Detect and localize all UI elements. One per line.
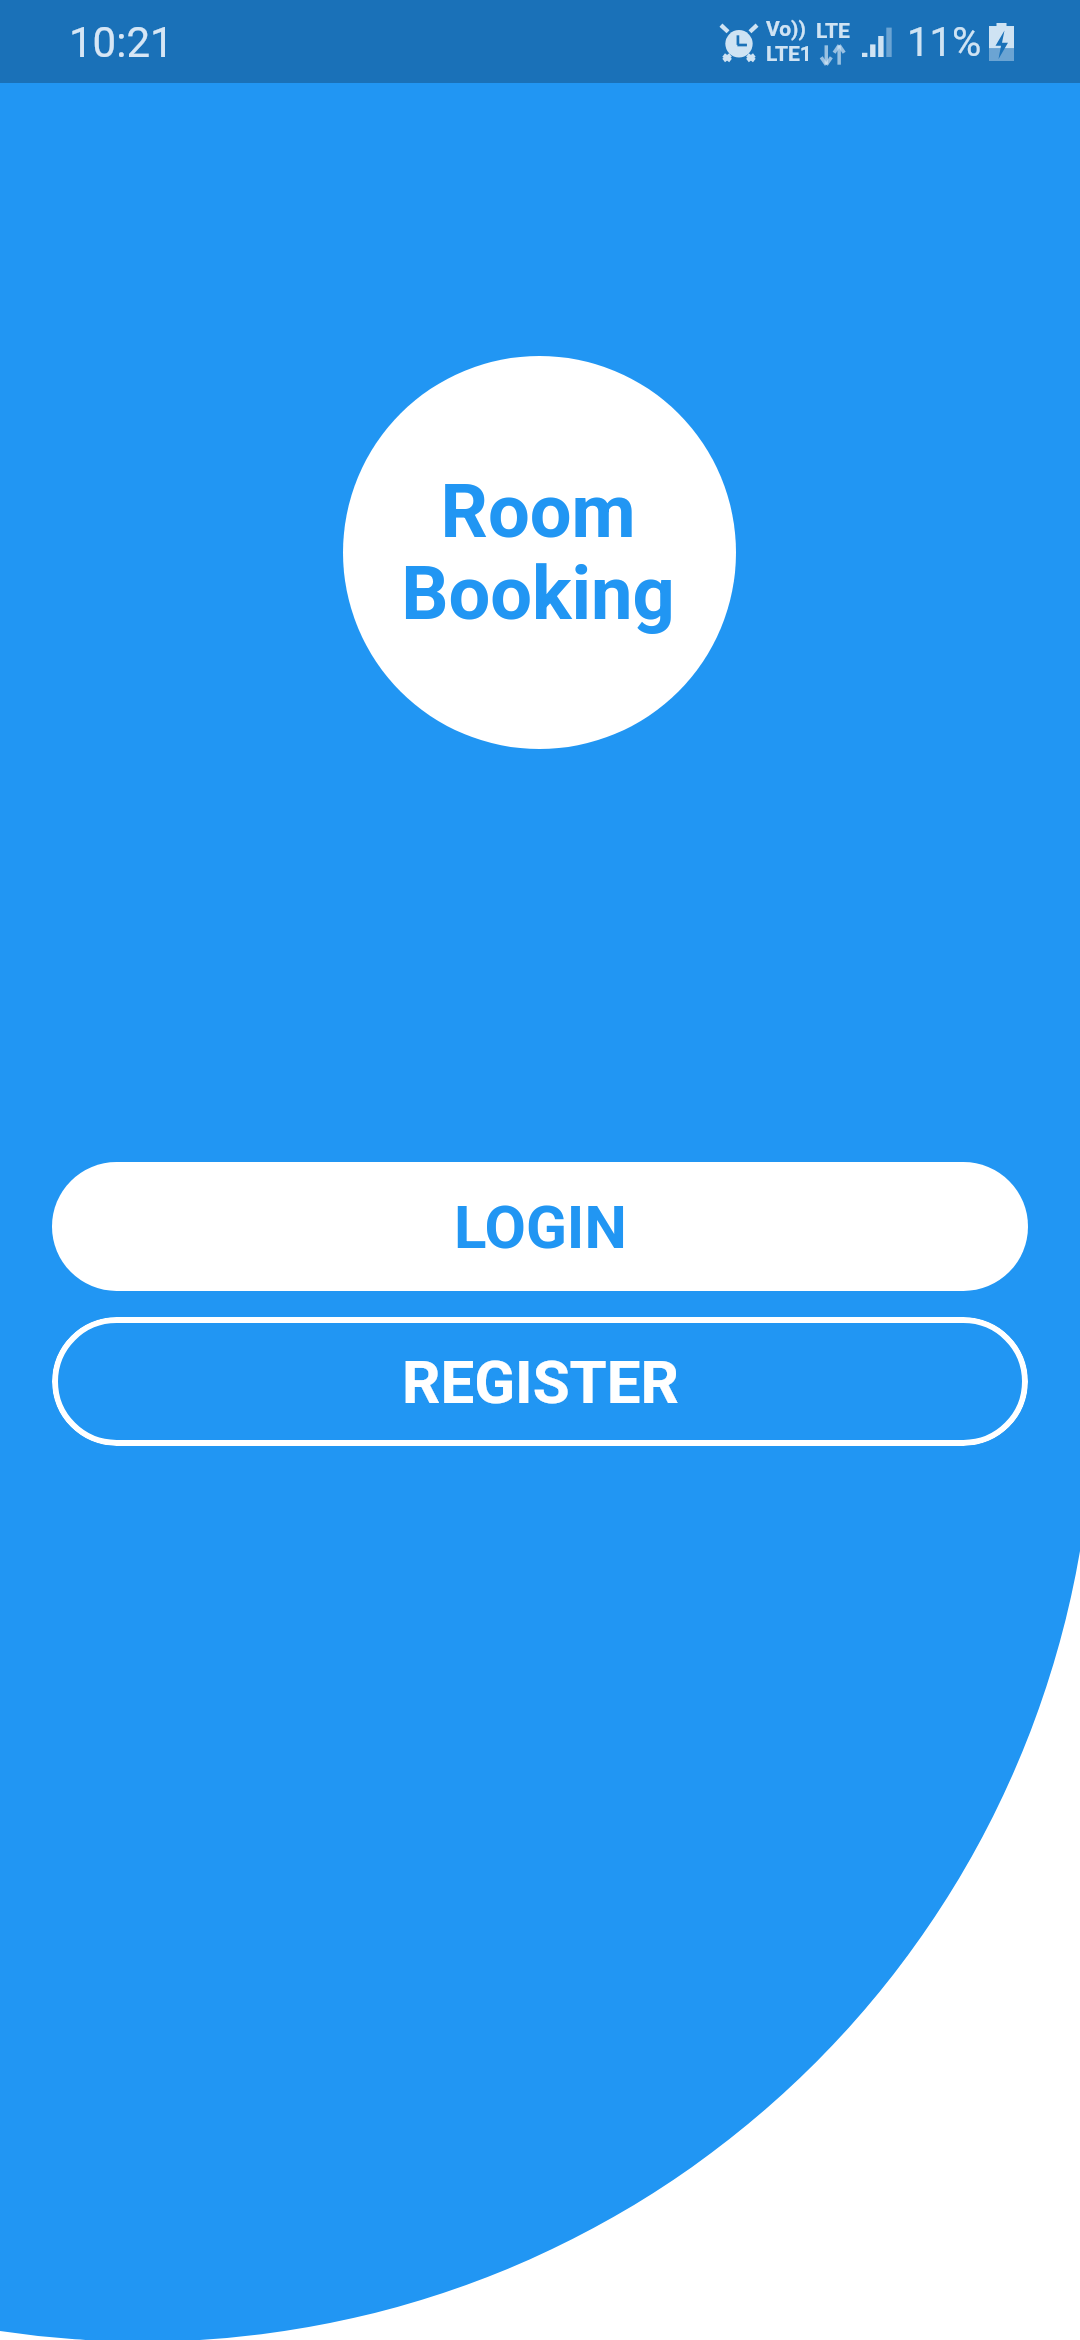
staticText: LTE: [816, 19, 850, 44]
staticText: 10:21: [69, 18, 174, 67]
staticText: 11%: [907, 19, 982, 66]
button[interactable]: REGISTER: [52, 1317, 1028, 1446]
staticText: LOGIN: [454, 1192, 627, 1262]
staticText: LTE1: [766, 42, 812, 67]
staticText: Room Booking: [401, 468, 675, 637]
button[interactable]: LOGIN: [52, 1162, 1028, 1291]
staticText: Vo)): [766, 17, 806, 42]
staticText: REGISTER: [402, 1347, 679, 1417]
